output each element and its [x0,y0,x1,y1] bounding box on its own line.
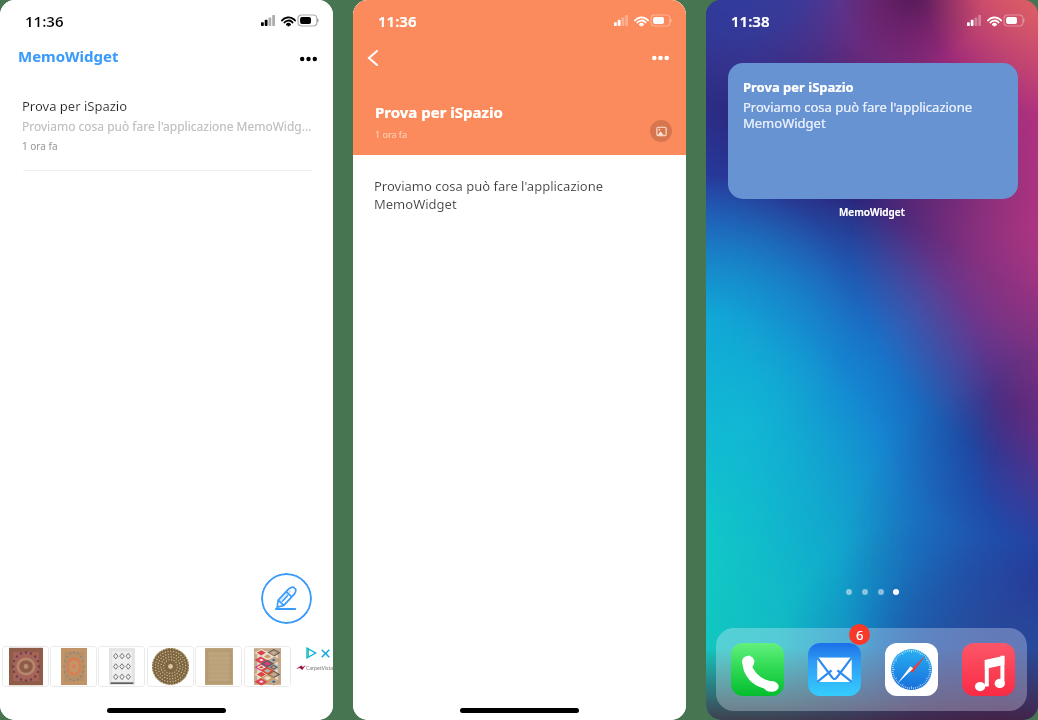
staticText: Proviamo cosa può fare l'applicazione Me… [743,98,973,131]
button[interactable]: Compose new memo [261,573,312,624]
button[interactable] [98,646,145,687]
staticText: Prova per iSpazio [375,102,503,122]
button[interactable]: Prova per iSpazio [0,91,333,163]
button[interactable] [244,646,291,687]
staticText: Proviamo cosa può fare l'applicazione Me… [22,118,312,134]
button[interactable]: Music [962,643,1015,696]
button[interactable]: Phone [731,643,784,696]
staticText: 1 ora fa [375,128,408,140]
button[interactable]: MemoWidget [18,46,119,66]
button[interactable] [147,646,194,687]
button[interactable]: Back [357,42,389,74]
staticText: CarpetVista [306,665,333,672]
button[interactable]: Mail [808,643,861,696]
staticText: 11:36 [25,11,64,31]
staticText: 11:36 [378,11,417,31]
button[interactable]: More options [293,44,323,74]
staticText: Proviamo cosa può fare l'applicazione Me… [374,177,604,213]
button[interactable]: More options [645,43,676,73]
staticText: Prova per iSpazio [22,97,128,115]
button[interactable] [2,646,49,687]
other: Ad choices [306,648,316,658]
button[interactable] [50,646,97,687]
button[interactable] [195,646,242,687]
staticText: 11:38 [731,11,770,31]
button[interactable]: Add image [650,120,672,142]
staticText: 6 [856,626,864,644]
button[interactable]: Prova per iSpazio [728,63,1018,199]
button[interactable]: Safari [885,643,938,696]
staticText: MemoWidget [839,205,905,219]
staticText: 1 ora fa [22,139,58,153]
staticText: Prova per iSpazio [743,78,854,96]
